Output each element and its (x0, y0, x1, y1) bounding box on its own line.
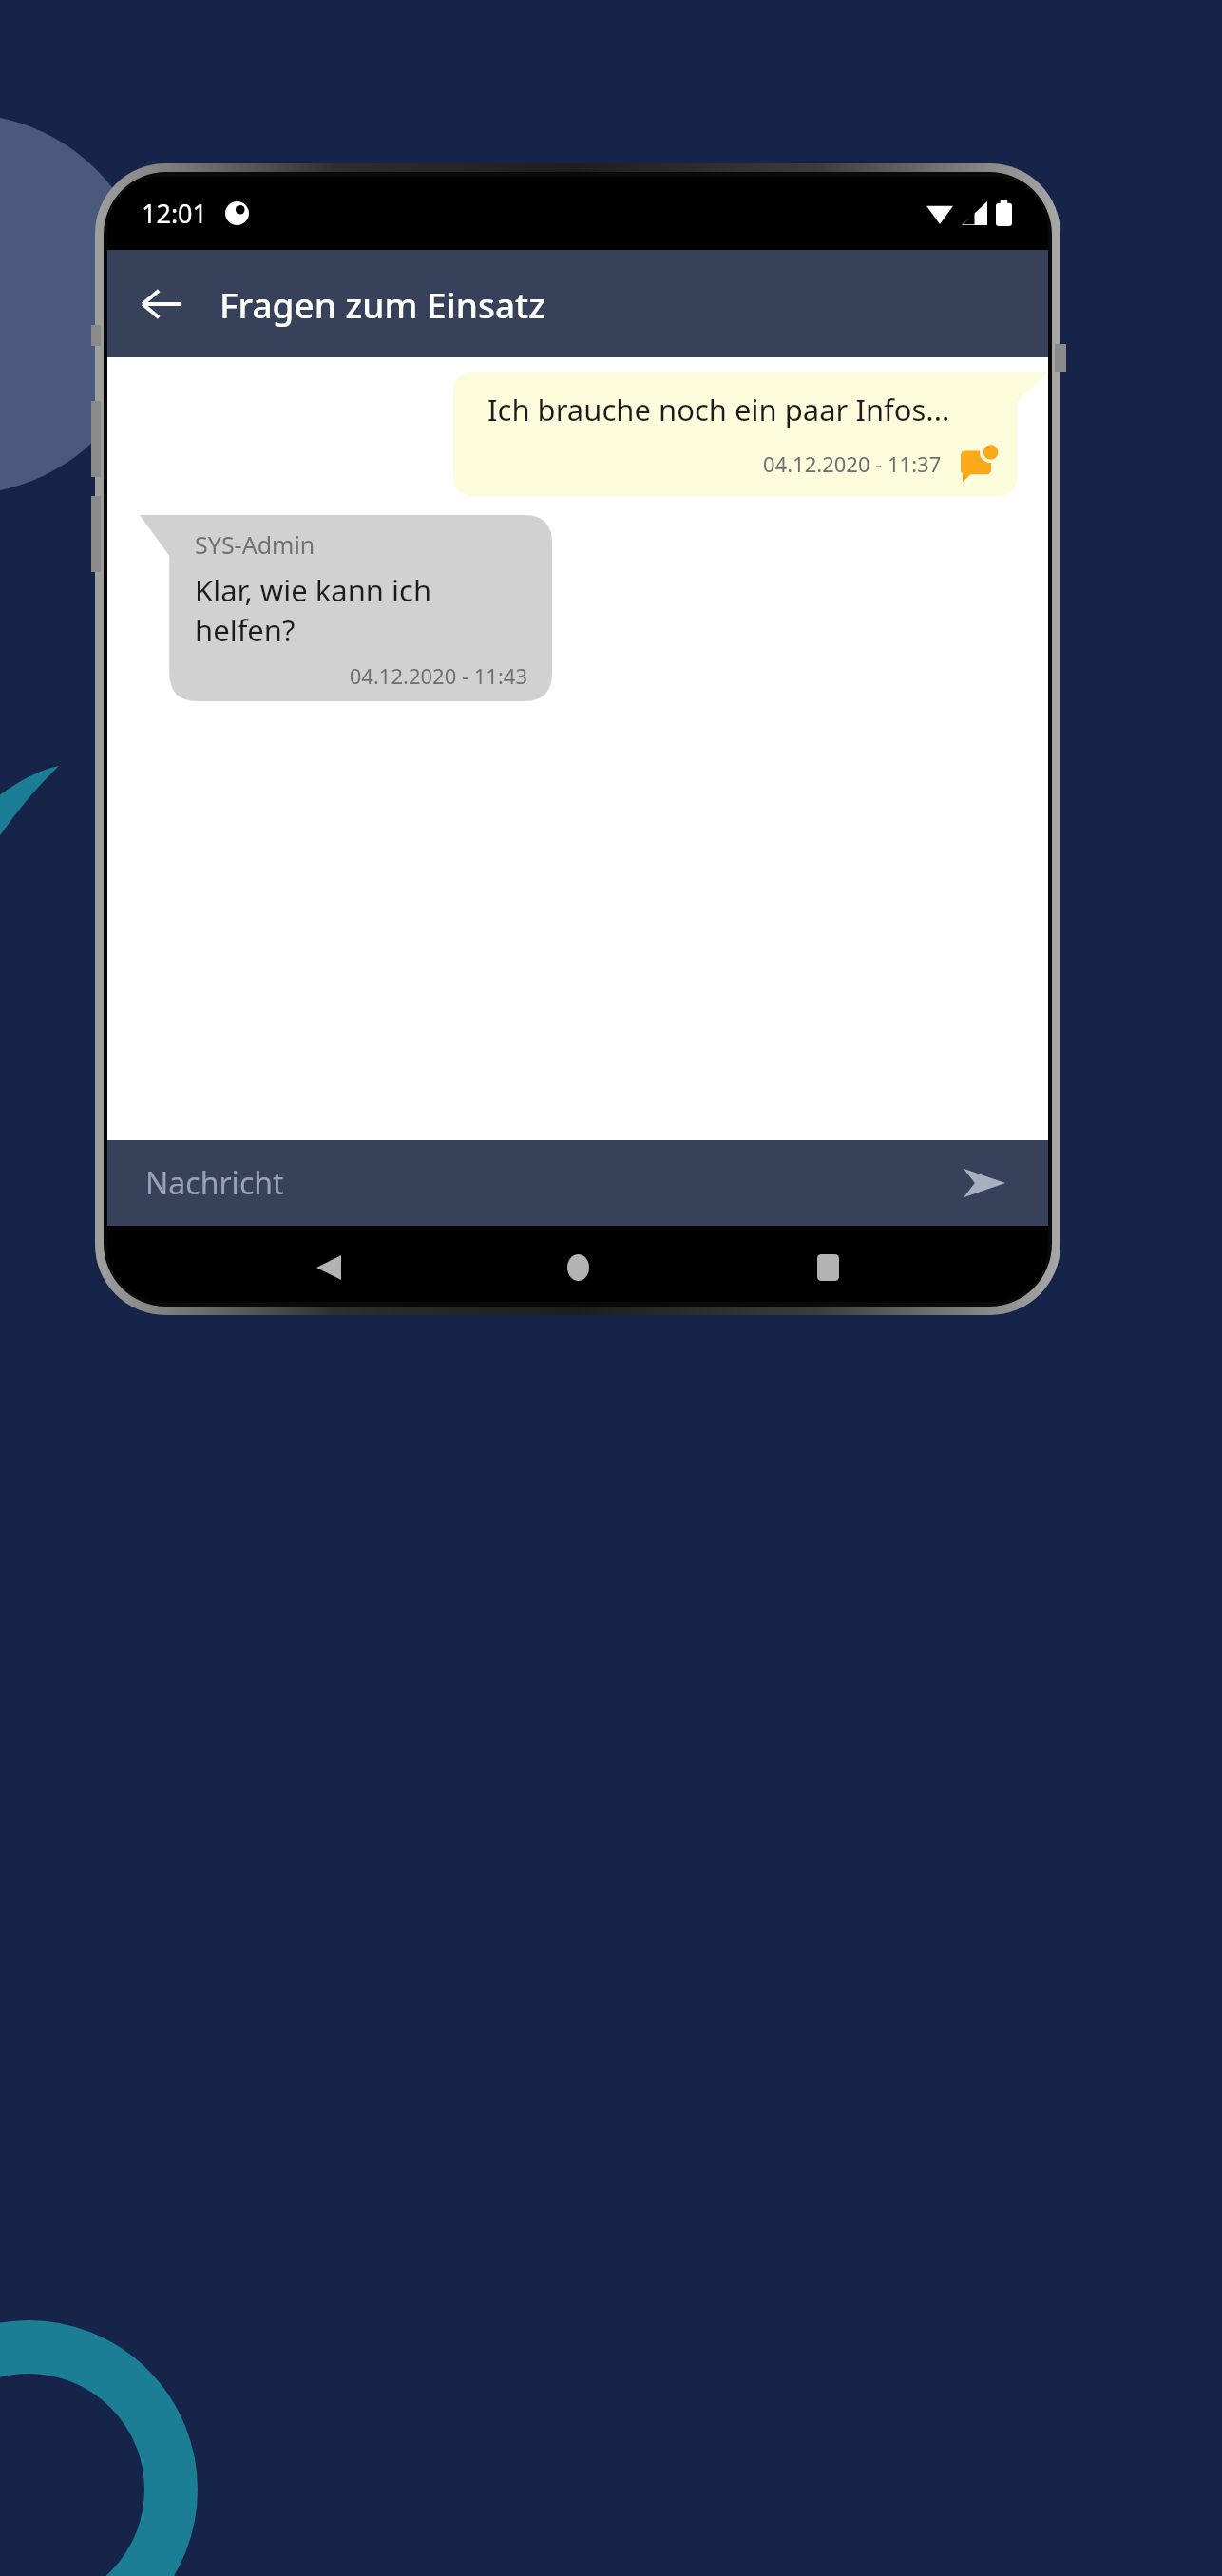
staticText: 12:01 (142, 196, 208, 231)
button[interactable]: Send (957, 1155, 1012, 1211)
button[interactable]: SYS-Admin (140, 515, 552, 701)
staticText: 04.12.2020 - 11:37 (763, 449, 942, 478)
button[interactable]: Ich brauche noch ein paar Infos... (453, 372, 1048, 496)
staticText: Klar, wie kann ich helfen? (195, 570, 527, 650)
staticText: Fragen zum Einsatz (220, 280, 545, 328)
button[interactable]: Nachricht (107, 1140, 1048, 1226)
button[interactable]: Home (549, 1239, 606, 1296)
button[interactable]: Back (121, 263, 202, 345)
staticText: Nachricht (145, 1162, 284, 1204)
button[interactable]: Recents (799, 1239, 856, 1296)
staticText: SYS-Admin (195, 528, 315, 561)
staticText: 04.12.2020 - 11:43 (195, 661, 527, 690)
button[interactable]: Back (300, 1239, 357, 1296)
staticText: Ich brauche noch ein paar Infos... (487, 390, 950, 429)
